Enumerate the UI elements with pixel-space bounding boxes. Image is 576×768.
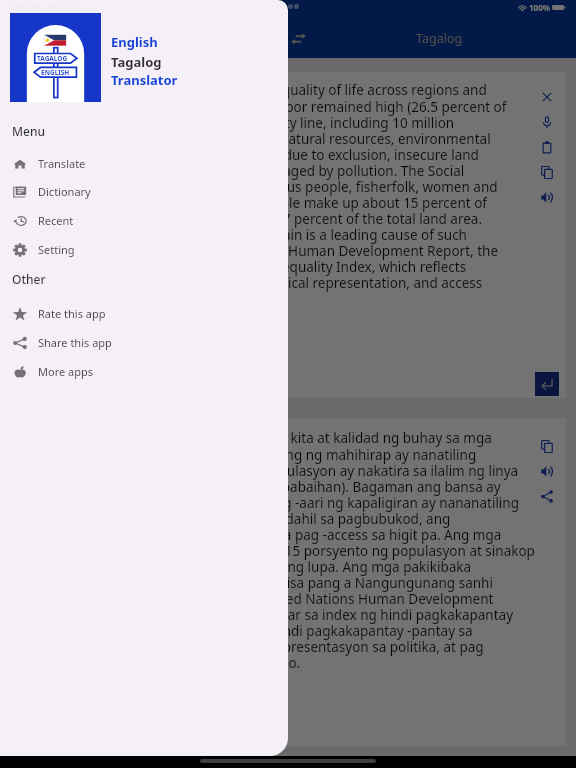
button[interactable]: Paste <box>533 135 561 160</box>
button[interactable]: Recent <box>0 207 288 233</box>
button[interactable]: Copy <box>533 434 561 459</box>
staticText: ENGLISH <box>41 68 70 77</box>
staticText: Menu <box>12 123 45 139</box>
button[interactable]: Share <box>533 484 561 509</box>
button[interactable] <box>0 0 576 756</box>
staticText: More apps <box>38 364 93 379</box>
staticText: Mayroong napakalawak na pagkakaiba sa ki… <box>22 429 566 672</box>
button[interactable]: Setting <box>0 236 288 262</box>
staticText: Translate <box>38 156 86 171</box>
staticText: 100% <box>529 2 550 13</box>
staticText: Tagalog <box>111 53 162 71</box>
staticText: Translator <box>111 71 178 89</box>
staticText: English <box>111 33 158 51</box>
button[interactable]: Dictionary <box>0 178 288 204</box>
button[interactable]: Speak <box>533 459 561 484</box>
staticText: Setting <box>38 242 75 257</box>
button[interactable]: Translate <box>0 150 288 176</box>
staticText: Other <box>12 271 46 287</box>
button[interactable]: More apps <box>0 358 288 384</box>
button[interactable]: Swap languages <box>284 25 312 53</box>
staticText: Dictionary <box>38 184 91 199</box>
button[interactable]: Translate <box>535 372 559 396</box>
button[interactable]: Clear <box>533 85 561 110</box>
staticText: TAGALOG <box>37 54 68 63</box>
staticText: Tagalog <box>416 30 463 47</box>
button[interactable]: Speak <box>533 185 561 210</box>
button[interactable]: Copy <box>533 160 561 185</box>
button[interactable]: Share this app <box>0 329 288 355</box>
staticText: Share this app <box>38 335 112 350</box>
staticText: Recent <box>38 213 74 228</box>
button[interactable]: Rate this app <box>0 300 288 326</box>
staticText: Rate this app <box>38 306 106 321</box>
staticText: There are wide disparities in income and… <box>22 81 566 308</box>
button[interactable]: Microphone <box>533 110 561 135</box>
